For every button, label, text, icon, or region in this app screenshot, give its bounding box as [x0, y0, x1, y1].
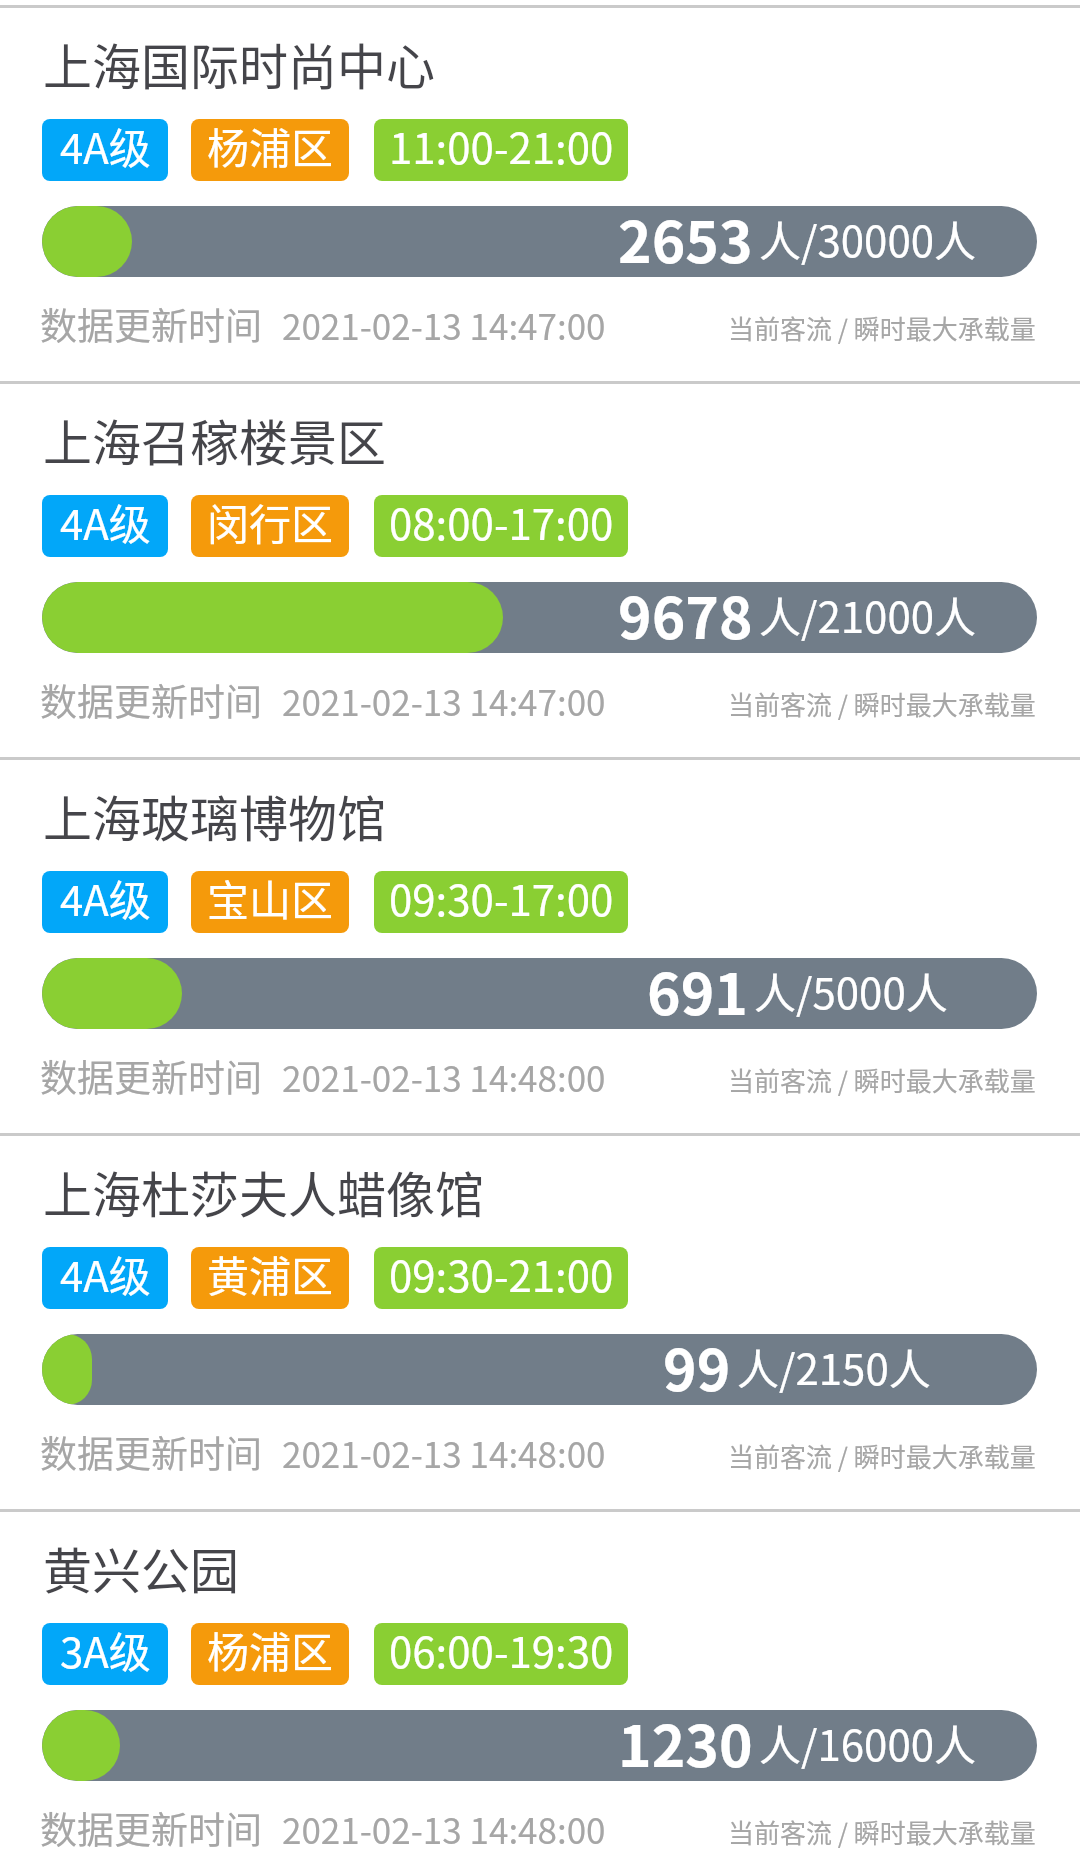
button[interactable]: 杨浦区: [191, 119, 349, 181]
button[interactable]: 上海召稼楼景区: [0, 384, 1080, 757]
staticText: 1230: [618, 1710, 753, 1772]
staticText: 闵行区: [207, 495, 334, 552]
staticText: 2653: [618, 206, 753, 268]
staticText: 上海召稼楼景区: [43, 404, 387, 475]
staticText: 09:30-21:00: [389, 1247, 614, 1304]
staticText: 2021-02-13 14:47:00: [282, 299, 606, 350]
staticText: 当前客流 / 瞬时最大承载量: [728, 1437, 1036, 1475]
staticText: 2021-02-13 14:48:00: [282, 1803, 606, 1854]
button[interactable]: 闵行区: [191, 495, 349, 557]
staticText: 09:30-17:00: [389, 871, 614, 928]
button[interactable]: 4A级: [42, 495, 168, 557]
staticText: 99: [663, 1334, 731, 1396]
button[interactable]: 06:00-19:30: [374, 1623, 628, 1685]
staticText: 当前客流 / 瞬时最大承载量: [728, 685, 1036, 723]
staticText: 11:00-21:00: [389, 119, 614, 176]
staticText: 06:00-19:30: [389, 1623, 614, 1680]
staticText: 黄兴公园: [43, 1532, 240, 1603]
staticText: 4A级: [60, 495, 151, 552]
staticText: 数据更新时间: [40, 1801, 262, 1855]
button[interactable]: 11:00-21:00: [374, 119, 628, 181]
staticText: 黄浦区: [207, 1247, 334, 1304]
button[interactable]: 4A级: [42, 119, 168, 181]
staticText: 宝山区: [207, 871, 334, 928]
staticText: 08:00-17:00: [389, 495, 614, 552]
staticText: 上海杜莎夫人蜡像馆: [43, 1156, 485, 1227]
button[interactable]: 黄兴公园: [0, 1512, 1080, 1876]
staticText: 人/2150人: [737, 1336, 931, 1397]
button[interactable]: 4A级: [42, 871, 168, 933]
staticText: 数据更新时间: [40, 297, 262, 351]
staticText: 当前客流 / 瞬时最大承载量: [728, 1813, 1036, 1851]
button[interactable]: 09:30-17:00: [374, 871, 628, 933]
staticText: 人/21000人: [759, 584, 977, 645]
button[interactable]: 上海国际时尚中心: [0, 8, 1080, 381]
button[interactable]: 4A级: [42, 1247, 168, 1309]
staticText: 杨浦区: [207, 1623, 334, 1680]
staticText: 2021-02-13 14:47:00: [282, 675, 606, 726]
staticText: 4A级: [60, 871, 151, 928]
button[interactable]: 09:30-21:00: [374, 1247, 628, 1309]
staticText: 数据更新时间: [40, 1425, 262, 1479]
button[interactable]: 08:00-17:00: [374, 495, 628, 557]
staticText: 杨浦区: [207, 119, 334, 176]
staticText: 4A级: [60, 1247, 151, 1304]
staticText: 上海国际时尚中心: [43, 28, 436, 99]
button[interactable]: 上海杜莎夫人蜡像馆: [0, 1136, 1080, 1509]
staticText: 人/30000人: [759, 208, 977, 269]
staticText: 9678: [618, 582, 753, 644]
button[interactable]: 3A级: [42, 1623, 168, 1685]
staticText: 当前客流 / 瞬时最大承载量: [728, 1061, 1036, 1099]
staticText: 4A级: [60, 119, 151, 176]
staticText: 人/5000人: [754, 960, 948, 1021]
button[interactable]: 上海玻璃博物馆: [0, 760, 1080, 1133]
button[interactable]: 宝山区: [191, 871, 349, 933]
staticText: 当前客流 / 瞬时最大承载量: [728, 309, 1036, 347]
button[interactable]: 杨浦区: [191, 1623, 349, 1685]
staticText: 691: [647, 958, 748, 1020]
staticText: 2021-02-13 14:48:00: [282, 1427, 606, 1478]
staticText: 上海玻璃博物馆: [43, 780, 387, 851]
staticText: 数据更新时间: [40, 1049, 262, 1103]
staticText: 3A级: [60, 1623, 151, 1680]
button[interactable]: 黄浦区: [191, 1247, 349, 1309]
staticText: 2021-02-13 14:48:00: [282, 1051, 606, 1102]
staticText: 人/16000人: [759, 1712, 977, 1773]
staticText: 数据更新时间: [40, 673, 262, 727]
